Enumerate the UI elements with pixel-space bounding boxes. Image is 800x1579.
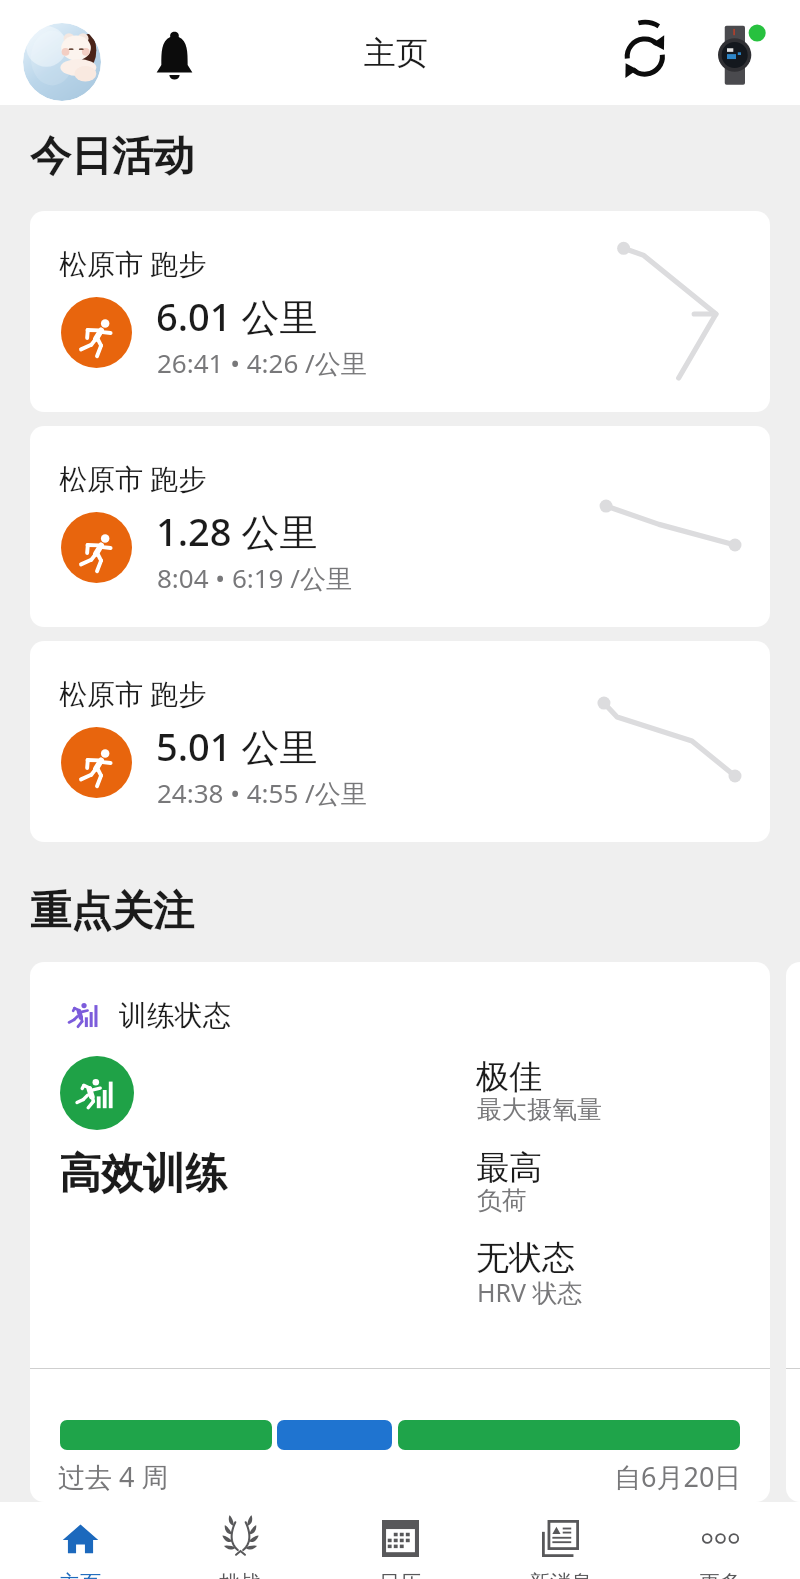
- button[interactable]: Sync: [612, 14, 682, 84]
- button[interactable]: 松原市 跑步: [30, 641, 770, 842]
- button[interactable]: 挑战: [160, 1502, 320, 1579]
- button[interactable]: 主页: [0, 1502, 160, 1579]
- staticText: 最高: [476, 1147, 542, 1189]
- staticText: HRV 状态: [477, 1275, 583, 1309]
- staticText: 自6月20日: [614, 1458, 742, 1495]
- staticText: 5.01 公里: [156, 720, 318, 772]
- staticText: 主页: [364, 33, 428, 73]
- staticText: 高效训练: [59, 1148, 227, 1201]
- button[interactable]: 新消息: [480, 1502, 640, 1579]
- staticText: 松原市 跑步: [59, 674, 207, 712]
- staticText: 重点关注: [30, 886, 194, 938]
- staticText: 训练状态: [119, 998, 231, 1033]
- staticText: 今日活动: [30, 131, 194, 183]
- staticText: 挑战: [219, 1570, 261, 1579]
- button[interactable]: Notifications: [144, 22, 204, 82]
- staticText: 极佳: [476, 1056, 542, 1098]
- staticText: 新消息: [529, 1570, 592, 1579]
- staticText: 8:04 • 6:19 /公里: [157, 560, 352, 596]
- button[interactable]: Device: [700, 10, 790, 100]
- staticText: 松原市 跑步: [59, 459, 207, 497]
- button[interactable]: 松原市 跑步: [30, 426, 770, 627]
- staticText: 日历: [379, 1570, 421, 1579]
- button[interactable]: 训练状态: [30, 962, 770, 1502]
- staticText: 6.01 公里: [156, 290, 318, 342]
- staticText: 无状态: [476, 1237, 575, 1279]
- staticText: 最大摄氧量: [477, 1094, 602, 1125]
- staticText: 松原市 跑步: [59, 244, 207, 282]
- staticText: 26:41 • 4:26 /公里: [157, 345, 367, 381]
- button[interactable]: Profile: [23, 23, 101, 101]
- staticText: 1.28 公里: [156, 505, 318, 557]
- staticText: 24:38 • 4:55 /公里: [157, 775, 367, 811]
- button[interactable]: 松原市 跑步: [30, 211, 770, 412]
- staticText: 更多: [699, 1570, 741, 1579]
- button[interactable]: 更多: [640, 1502, 800, 1579]
- staticText: 过去 4 周: [58, 1458, 169, 1495]
- staticText: 负荷: [477, 1185, 527, 1216]
- button[interactable]: 日历: [320, 1502, 480, 1579]
- staticText: 主页: [59, 1570, 101, 1579]
